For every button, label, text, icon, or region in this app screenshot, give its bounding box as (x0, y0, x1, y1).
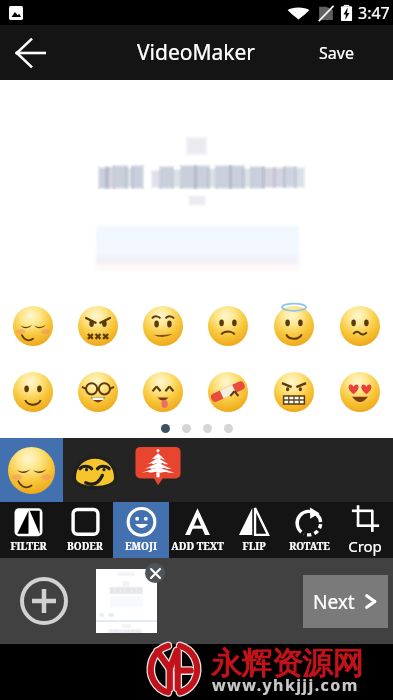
button[interactable]: Remove clip (145, 563, 165, 583)
staticText: Next (313, 589, 355, 615)
button[interactable] (130, 372, 195, 412)
button[interactable] (195, 306, 261, 346)
button[interactable] (261, 306, 327, 346)
button[interactable]: Emoji pack 2 (63, 438, 126, 502)
button[interactable] (65, 372, 130, 412)
button[interactable] (195, 372, 261, 412)
staticText: www.yhkjjj.com (212, 674, 359, 696)
button[interactable]: FLIP (225, 502, 281, 558)
button[interactable] (0, 306, 65, 346)
button[interactable]: FILTER (0, 502, 57, 558)
staticText: ROTATE (289, 539, 330, 553)
staticText: Crop (348, 536, 382, 556)
staticText: FILTER (10, 539, 47, 553)
button[interactable]: Crop (337, 502, 393, 558)
button[interactable] (327, 306, 393, 346)
button[interactable]: Add clip (20, 577, 68, 625)
staticText: Save (319, 42, 354, 64)
button[interactable]: Next (303, 575, 388, 628)
staticText: 永辉资源网 (211, 644, 363, 683)
button[interactable]: ADD TEXT (169, 502, 225, 558)
button[interactable]: Emoji pack 1 (0, 438, 63, 502)
button[interactable]: EMOJI (113, 502, 169, 558)
button[interactable] (327, 372, 393, 412)
button[interactable]: BODER (57, 502, 113, 558)
staticText: BODER (67, 539, 103, 553)
button[interactable] (130, 306, 195, 346)
button[interactable]: Remove clip (96, 569, 157, 633)
button[interactable]: Save (319, 42, 354, 64)
staticText: VideoMaker (137, 38, 256, 67)
staticText: FLIP (242, 539, 266, 553)
button[interactable] (65, 306, 130, 346)
button[interactable]: Back (2, 25, 58, 80)
staticText: EMOJI (125, 539, 157, 553)
button[interactable] (0, 372, 65, 412)
button[interactable]: Sticker pack (126, 438, 189, 502)
staticText: 3:47 (358, 2, 390, 24)
staticText: ADD TEXT (171, 539, 224, 553)
button[interactable]: ROTATE (281, 502, 337, 558)
button[interactable] (261, 372, 327, 412)
